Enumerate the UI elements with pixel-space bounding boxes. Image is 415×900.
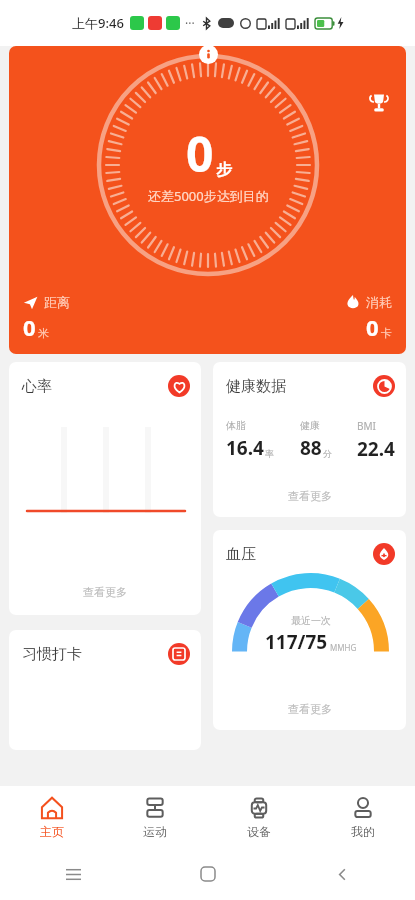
staticText: 距离: [44, 294, 70, 310]
button[interactable]: Info: [199, 46, 218, 64]
button[interactable]: 主页: [0, 786, 103, 848]
staticText: 设备: [247, 824, 271, 839]
staticText: 心率: [22, 377, 52, 396]
staticText: 卡: [381, 326, 392, 340]
staticText: 88: [300, 435, 322, 461]
staticText: 步: [216, 160, 232, 180]
button[interactable]: Home: [193, 859, 223, 889]
staticText: MMHG: [330, 642, 357, 653]
button[interactable]: 健康数据: [213, 362, 406, 517]
button[interactable]: Habit check-in: [168, 643, 190, 665]
staticText: 117/75: [265, 629, 328, 655]
staticText: 运动: [143, 824, 167, 839]
button[interactable]: 查看更多: [75, 583, 135, 601]
staticText: 查看更多: [288, 489, 332, 503]
button[interactable]: Achievements: [9, 46, 406, 354]
button[interactable]: 心率: [9, 362, 201, 615]
button[interactable]: Health data: [373, 375, 395, 397]
staticText: 体脂: [226, 419, 246, 432]
staticText: BMI: [357, 419, 376, 433]
button[interactable]: 运动: [103, 786, 207, 848]
staticText: 查看更多: [83, 585, 127, 599]
staticText: 血压: [226, 545, 256, 564]
staticText: 率: [265, 448, 274, 459]
button[interactable]: 查看更多: [280, 700, 340, 718]
staticText: 米: [38, 326, 49, 340]
button[interactable]: 消耗: [346, 294, 392, 342]
staticText: 习惯打卡: [22, 645, 82, 664]
staticText: 0: [23, 312, 36, 342]
button[interactable]: 我的: [311, 786, 415, 848]
staticText: 22.4: [357, 436, 395, 462]
button[interactable]: 血压: [213, 530, 406, 730]
button[interactable]: 查看更多: [280, 487, 340, 505]
staticText: 上午9:46: [72, 14, 124, 32]
staticText: 主页: [40, 824, 64, 839]
staticText: 健康: [300, 419, 320, 432]
staticText: 16.4: [226, 435, 264, 461]
staticText: 我的: [351, 824, 375, 839]
staticText: ···: [185, 15, 195, 31]
staticText: 最近一次: [291, 614, 331, 627]
button[interactable]: Blood pressure: [373, 543, 395, 565]
button[interactable]: Recent apps: [58, 859, 88, 889]
staticText: 健康数据: [226, 377, 286, 396]
staticText: 0: [366, 312, 379, 342]
button[interactable]: 设备: [207, 786, 311, 848]
staticText: 0: [186, 121, 214, 186]
staticText: 还差5000步达到目的: [148, 187, 269, 205]
button[interactable]: Achievements: [366, 90, 392, 116]
staticText: 消耗: [366, 294, 392, 310]
button[interactable]: 距离: [23, 294, 70, 342]
staticText: 分: [323, 448, 332, 459]
button[interactable]: 习惯打卡: [9, 630, 201, 750]
button[interactable]: Back: [327, 859, 357, 889]
button[interactable]: Heart rate: [168, 375, 190, 397]
staticText: 查看更多: [288, 702, 332, 716]
